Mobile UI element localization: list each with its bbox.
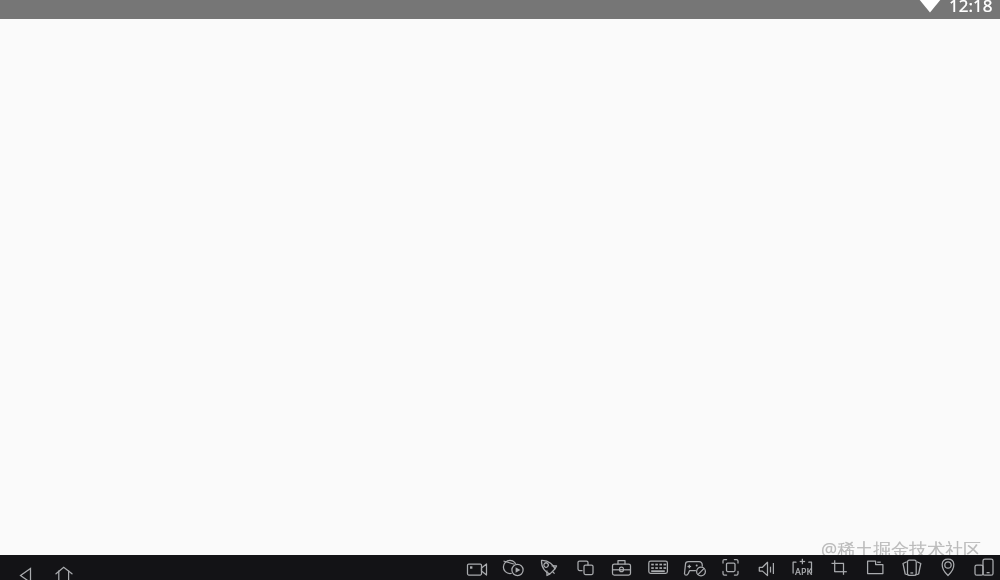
staticText: @稀土掘金技术社区 [821,537,982,562]
staticText: 12:18 [949,0,993,13]
staticText: APK [795,565,813,577]
button[interactable]: Status bar [0,0,1000,19]
